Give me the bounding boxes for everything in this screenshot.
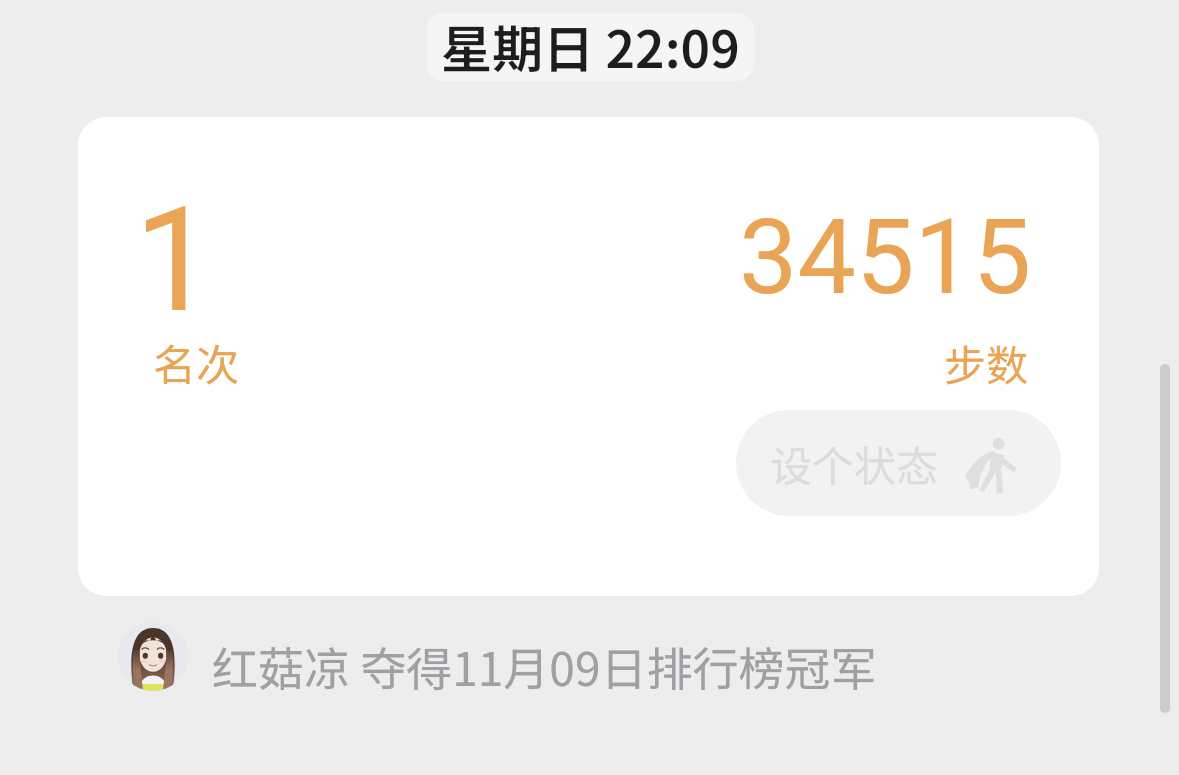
button[interactable]: 星期日 22:09 [426,13,754,81]
button[interactable]: 设个状态 [736,410,1061,516]
button[interactable]: 红菇凉 夺得11月09日排行榜冠军 [208,630,888,702]
other: Set status [965,437,1021,495]
staticText: 设个状态 [770,433,939,494]
staticText: 步数 [944,332,1029,393]
staticText: 红菇凉 夺得11月09日排行榜冠军 [212,633,877,700]
staticText: 1 [134,176,215,345]
staticText: 星期日 22:09 [441,13,740,77]
staticText: 34515 [739,197,1032,319]
staticText: 名次 [153,331,239,393]
button[interactable]: 红菇凉 的头像 [118,621,188,691]
